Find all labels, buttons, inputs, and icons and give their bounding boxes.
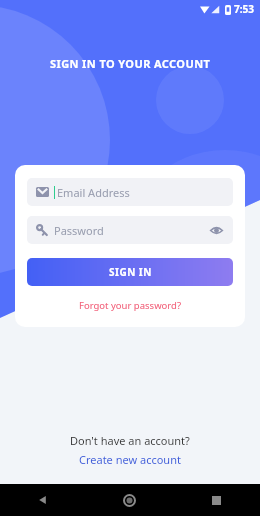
staticText: SIGN IN TO YOUR ACCOUNT [50,56,211,71]
staticText: 7:53 [234,2,254,16]
button[interactable]: Show password [208,222,224,238]
button[interactable]: Email Address [27,178,233,206]
button[interactable]: SIGN IN [27,258,233,286]
button[interactable]: Password [27,216,233,244]
button[interactable]: Recents [173,484,260,516]
staticText: Password [54,223,104,238]
staticText: Don't have an account? [70,433,190,448]
button[interactable]: Forgot your password? [73,297,188,314]
staticText: Email Address [57,185,130,200]
button[interactable]: Back [0,484,86,516]
staticText: Create new account [79,452,181,467]
button[interactable]: Home [86,484,173,516]
button[interactable]: Create new account [73,451,187,468]
staticText: Forgot your password? [79,299,182,312]
staticText: SIGN IN [109,265,152,279]
